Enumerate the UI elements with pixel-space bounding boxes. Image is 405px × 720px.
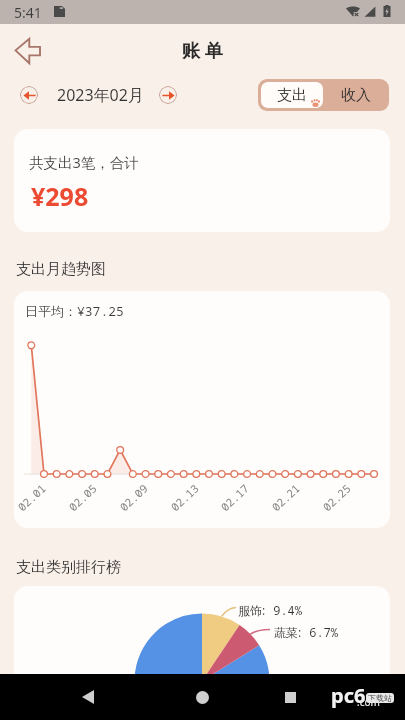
button[interactable]: Next month (159, 86, 177, 104)
button[interactable]: Recents (270, 677, 310, 717)
staticText: pc6 (331, 682, 366, 709)
staticText: 02.25 (319, 481, 354, 514)
staticText: 下载站 (368, 693, 392, 703)
staticText: 支出 (277, 86, 307, 105)
staticText: 账 单 (182, 38, 223, 63)
staticText: 5:41 (14, 3, 42, 22)
button[interactable]: 支出 (261, 82, 323, 108)
staticText: 6.7% (302, 624, 339, 640)
button[interactable]: Back (6, 30, 46, 64)
button[interactable]: Home (182, 677, 222, 717)
button[interactable]: Back (68, 677, 108, 717)
staticText: 共支出3笔，合计 (29, 152, 139, 172)
staticText: ¥298 (31, 179, 89, 213)
staticText: 02.13 (167, 481, 202, 514)
staticText: 02.17 (217, 481, 252, 514)
staticText: 02.21 (268, 481, 303, 514)
staticText: 02.01 (14, 481, 49, 514)
staticText: 支出月趋势图 (16, 260, 106, 279)
staticText: 02.05 (65, 481, 100, 514)
staticText: 日平均：¥37.25 (25, 302, 124, 320)
staticText: 收入 (341, 86, 371, 105)
staticText: 9.4% (266, 602, 303, 618)
staticText: 服饰: (238, 602, 266, 618)
button[interactable]: 收入 (323, 79, 389, 111)
staticText: 支出类别排行榜 (16, 558, 121, 577)
staticText: 02.09 (116, 481, 151, 514)
staticText: 2023年02月 (57, 84, 144, 106)
button[interactable]: 共支出3笔，合计 (14, 129, 390, 232)
button[interactable]: Previous month (20, 86, 38, 104)
staticText: .com (357, 695, 380, 709)
staticText: 蔬菜: (274, 624, 302, 640)
